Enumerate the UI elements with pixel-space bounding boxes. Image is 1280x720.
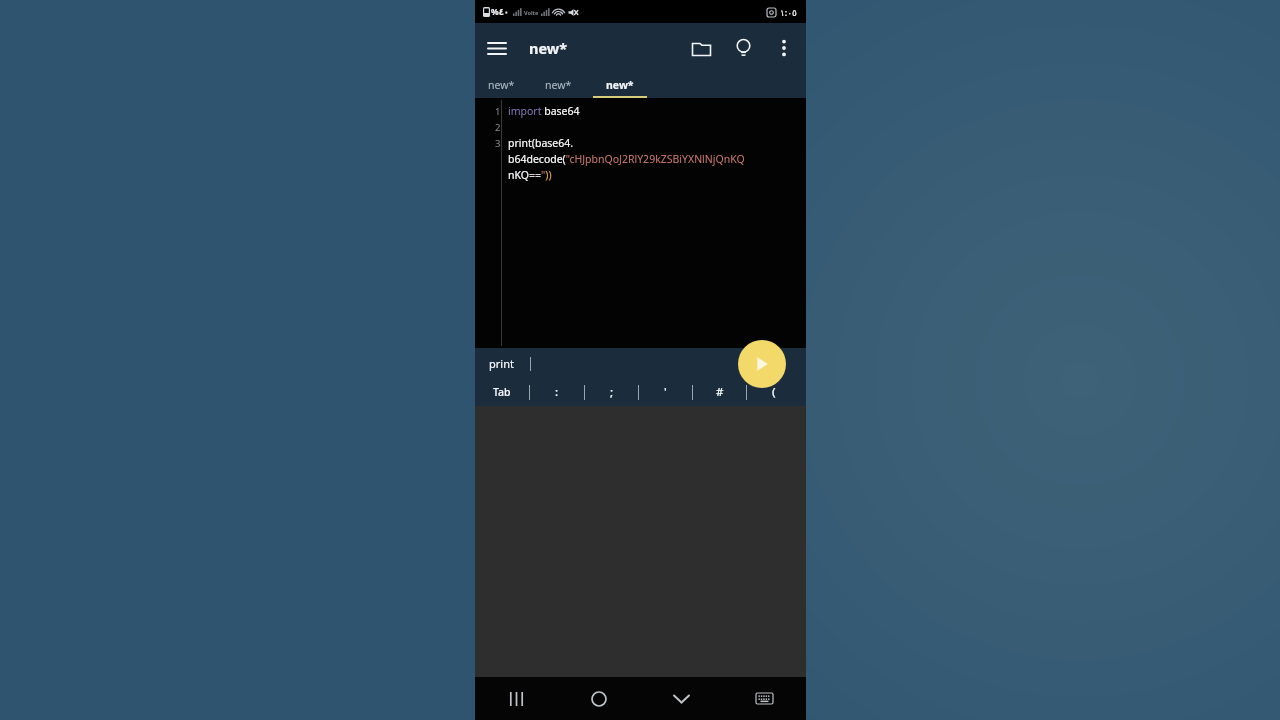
staticText: print(base64. xyxy=(508,136,574,150)
staticText: 3 xyxy=(495,137,501,150)
button[interactable]: Run xyxy=(738,340,786,388)
button[interactable]: new* xyxy=(475,72,527,98)
button[interactable]: Open menu xyxy=(475,26,519,70)
staticText: new* xyxy=(545,78,572,92)
button[interactable]: Tab xyxy=(475,378,529,406)
staticText: ( xyxy=(772,384,776,400)
staticText: nKQ==")) xyxy=(508,168,552,182)
button[interactable]: new* xyxy=(527,72,589,98)
button[interactable]: # xyxy=(693,378,746,406)
staticText: 1 xyxy=(495,105,501,118)
staticText: Volte xyxy=(524,9,539,16)
staticText: ; xyxy=(610,384,614,400)
button[interactable]: Home xyxy=(557,677,640,720)
staticText: ١:٠٥ xyxy=(780,6,797,18)
staticText: new* xyxy=(529,38,568,58)
button[interactable]: print xyxy=(487,352,516,375)
staticText: new* xyxy=(606,78,634,92)
staticText: # xyxy=(716,384,724,400)
staticText: Tab xyxy=(493,385,511,399)
staticText: print xyxy=(489,356,514,371)
button[interactable]: Hide keyboard xyxy=(640,677,723,720)
button[interactable]: ' xyxy=(639,378,692,406)
button[interactable]: Show keyboard xyxy=(723,677,806,720)
button[interactable]: More options xyxy=(764,28,804,68)
staticText: import base64 xyxy=(508,104,580,118)
button[interactable]: ( xyxy=(747,378,800,406)
button[interactable]: Hints xyxy=(722,27,764,69)
button[interactable]: new* xyxy=(589,72,651,98)
staticText: 2 xyxy=(495,121,501,134)
button[interactable]: : xyxy=(530,378,584,406)
staticText: b64decode("cHJpbnQoJ2RlY29kZSBiYXNlNjQnK… xyxy=(508,152,745,166)
button[interactable]: Recent apps xyxy=(475,677,557,720)
staticText: %٤٠ xyxy=(491,6,510,18)
button[interactable]: Open file xyxy=(680,27,722,69)
staticText: : xyxy=(555,384,559,400)
button[interactable]: ; xyxy=(585,378,638,406)
staticText: ' xyxy=(664,384,667,400)
staticText: new* xyxy=(488,78,515,92)
